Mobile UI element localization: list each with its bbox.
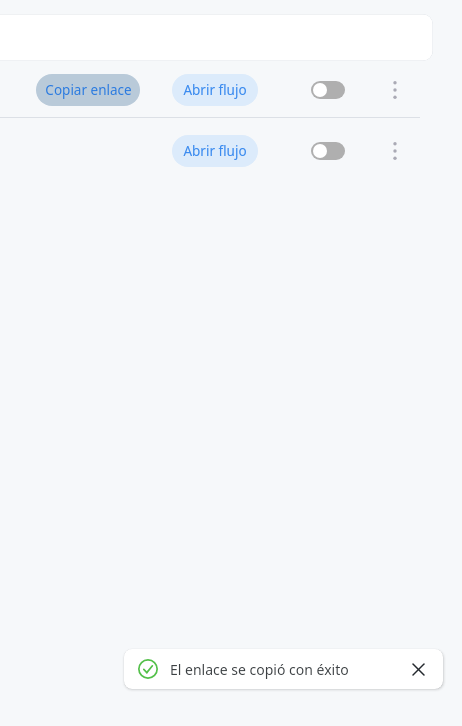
button[interactable]: Abrir flujo [172,74,258,106]
button[interactable]: Cerrar [407,658,429,680]
staticText: Abrir flujo [183,81,247,99]
button[interactable]: Activar [311,142,345,160]
button[interactable]: Más opciones [381,135,409,167]
button[interactable]: Más opciones [381,74,409,106]
button[interactable]: Abrir flujo [172,135,258,167]
staticText: Copiar enlace [45,81,132,99]
staticText: El enlace se copió con éxito [170,660,349,679]
button[interactable] [0,14,433,61]
button[interactable]: Activar [311,81,345,99]
staticText: Abrir flujo [183,142,247,160]
button[interactable]: Copiar enlace [36,74,140,106]
